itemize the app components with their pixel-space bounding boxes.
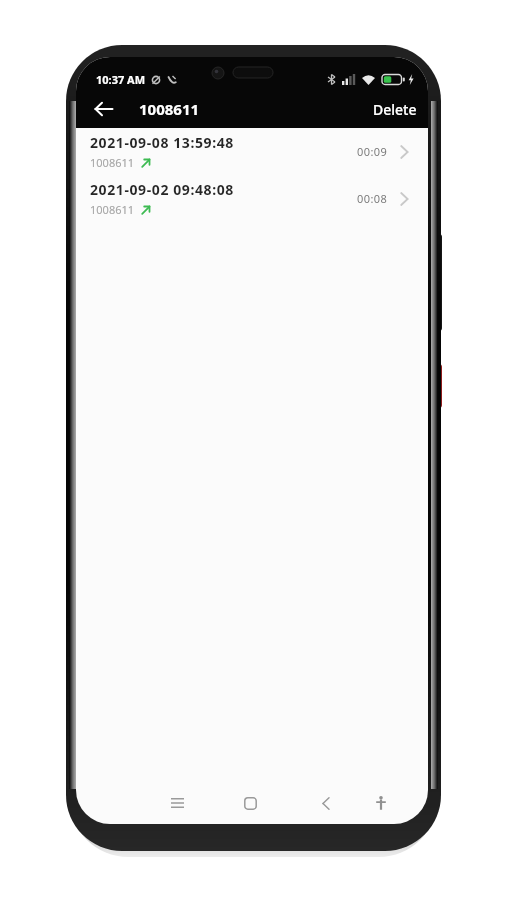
button[interactable] bbox=[163, 789, 191, 817]
staticText: 00:09 bbox=[357, 144, 388, 159]
staticText: Delete bbox=[373, 100, 417, 119]
staticText: 2021-09-02 09:48:08 bbox=[90, 180, 234, 199]
staticText: 10:37 AM bbox=[96, 72, 146, 87]
button[interactable]: Delete bbox=[369, 96, 421, 123]
staticText: 00:08 bbox=[357, 191, 388, 206]
button[interactable] bbox=[236, 789, 264, 817]
staticText: 2021-09-08 13:59:48 bbox=[90, 133, 234, 152]
staticText: 1008611 bbox=[90, 202, 135, 217]
staticText: 1008611 bbox=[90, 155, 135, 170]
button[interactable] bbox=[312, 789, 340, 817]
button[interactable]: 2021-09-02 09:48:08 bbox=[76, 175, 428, 222]
button[interactable] bbox=[88, 93, 120, 125]
staticText: 1008611 bbox=[139, 99, 200, 119]
button[interactable]: 2021-09-08 13:59:48 bbox=[76, 128, 428, 175]
button[interactable] bbox=[367, 789, 395, 817]
